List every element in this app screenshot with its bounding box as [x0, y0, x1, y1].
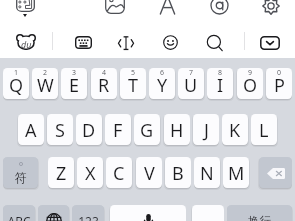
button[interactable]: 1: [3, 68, 29, 99]
button[interactable]: C: [106, 157, 132, 188]
button[interactable]: J: [193, 114, 219, 145]
staticText: A: [25, 118, 37, 143]
staticText: Z: [56, 161, 67, 186]
button[interactable]: Emoji: [156, 28, 185, 57]
staticText: 7: [189, 68, 194, 78]
button[interactable]: Keyboard layout: [68, 29, 99, 56]
staticText: F: [113, 118, 123, 143]
button[interactable]: 123: [72, 205, 104, 221]
button[interactable]: 9: [237, 68, 263, 99]
button[interactable]: B: [165, 157, 191, 188]
staticText: 符: [15, 170, 27, 185]
staticText: S: [55, 118, 65, 143]
staticText: O: [243, 73, 258, 98]
staticText: 9: [248, 68, 253, 78]
button[interactable]: K: [222, 114, 248, 145]
staticText: P: [274, 73, 285, 98]
staticText: D: [82, 118, 96, 143]
staticText: J: [204, 118, 209, 143]
button[interactable]: Z: [48, 157, 74, 188]
button[interactable]: 0: [266, 68, 292, 99]
staticText: ABC: [7, 213, 31, 221]
button[interactable]: Input panel: [9, 0, 42, 19]
staticText: X: [85, 161, 96, 186]
staticText: 123: [78, 213, 99, 221]
button[interactable]: [38, 205, 69, 221]
staticText: M: [228, 161, 245, 186]
button[interactable]: 7: [178, 68, 204, 99]
button[interactable]: 8: [207, 68, 233, 99]
staticText: 4: [102, 68, 107, 78]
button[interactable]: L: [251, 114, 277, 145]
button[interactable]: Search: [200, 28, 230, 58]
staticText: 3: [72, 68, 77, 78]
staticText: Q: [9, 73, 24, 98]
staticText: 2: [43, 68, 48, 78]
staticText: 换行: [248, 214, 271, 221]
staticText: 6: [160, 68, 165, 78]
staticText: W: [37, 73, 54, 98]
staticText: I: [217, 73, 224, 98]
button[interactable]: N: [194, 157, 220, 188]
staticText: 8: [218, 68, 223, 78]
staticText: 1: [14, 68, 19, 78]
button[interactable]: Move cursor: [111, 29, 141, 57]
button[interactable]: F: [105, 114, 131, 145]
button[interactable]: 6: [149, 68, 175, 99]
button[interactable]: .,: [192, 205, 224, 221]
button[interactable]: 换行: [227, 205, 292, 221]
button[interactable]: Hide keyboard: [253, 29, 287, 57]
button[interactable]: G: [134, 114, 160, 145]
staticText: V: [144, 161, 155, 186]
staticText: R: [98, 73, 110, 98]
button[interactable]: [110, 205, 186, 221]
button[interactable]: X: [77, 157, 103, 188]
button[interactable]: At sign: [203, 0, 236, 22]
button[interactable]: Font style: [152, 0, 183, 22]
button[interactable]: 5: [120, 68, 146, 99]
button[interactable]: V: [136, 157, 162, 188]
staticText: B: [172, 161, 184, 186]
button[interactable]: M: [223, 157, 249, 188]
staticText: N: [200, 161, 214, 186]
staticText: H: [170, 118, 184, 143]
button[interactable]: Baidu input: [9, 27, 43, 56]
staticText: G: [140, 118, 154, 143]
staticText: 0: [277, 68, 282, 78]
staticText: Y: [157, 73, 168, 98]
button[interactable]: D: [76, 114, 102, 145]
staticText: U: [184, 73, 198, 98]
button[interactable]: [259, 157, 292, 188]
button[interactable]: Expand panel: [23, 14, 27, 17]
staticText: K: [229, 118, 241, 143]
staticText: L: [259, 118, 269, 143]
button[interactable]: 3: [61, 68, 87, 99]
staticText: E: [69, 73, 80, 98]
button[interactable]: H: [164, 114, 190, 145]
button[interactable]: Settings: [255, 0, 287, 22]
staticText: C: [113, 161, 125, 186]
staticText: du: [21, 38, 32, 50]
button[interactable]: 符: [3, 157, 38, 188]
button[interactable]: A: [18, 114, 44, 145]
button[interactable]: 4: [91, 68, 117, 99]
button[interactable]: ABC: [3, 205, 35, 221]
button[interactable]: S: [47, 114, 73, 145]
staticText: 5: [131, 68, 136, 78]
staticText: T: [128, 73, 139, 98]
button[interactable]: Photos: [98, 0, 132, 21]
button[interactable]: 2: [32, 68, 58, 99]
